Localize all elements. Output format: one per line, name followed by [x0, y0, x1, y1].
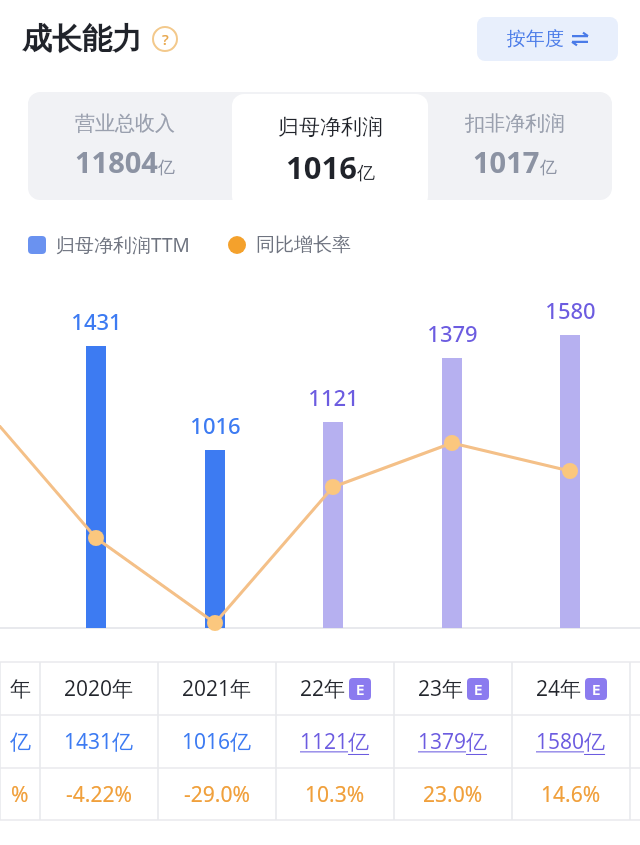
button[interactable]: 10.3%	[276, 768, 394, 820]
button[interactable]: 1121亿	[276, 715, 394, 768]
staticText: E	[592, 679, 601, 699]
staticText: 营业总收入	[75, 111, 175, 136]
staticText: 1431	[71, 306, 122, 336]
button[interactable]: 22年	[276, 662, 394, 715]
staticText: 亿	[10, 729, 31, 755]
button[interactable]: 亿	[0, 715, 40, 768]
staticText: 1121亿	[300, 727, 370, 756]
staticText: 亿	[158, 157, 175, 178]
staticText: 1379亿	[418, 727, 488, 756]
staticText: 24年	[536, 674, 582, 703]
staticText: 1431亿	[64, 727, 134, 756]
staticText: E	[356, 679, 365, 699]
staticText: 归母净利润	[278, 114, 383, 140]
button[interactable]: 1379亿	[394, 715, 512, 768]
button[interactable]: 14.6%	[512, 768, 630, 820]
button[interactable]: 扣非净利润	[417, 92, 612, 200]
staticText: 亿	[540, 157, 557, 178]
staticText: 扣非净利润	[465, 111, 565, 136]
staticText: 1017	[473, 142, 540, 181]
staticText: 1016	[286, 146, 357, 188]
button[interactable]: 23年	[394, 662, 512, 715]
button[interactable]: -29.0%	[158, 768, 276, 820]
staticText: 亿	[357, 162, 375, 185]
button[interactable]: 2021年	[158, 662, 276, 715]
staticText: 1016	[190, 410, 241, 440]
button[interactable]: 1580亿	[512, 715, 630, 768]
button[interactable]: -4.22%	[40, 768, 158, 820]
staticText: 1121	[308, 382, 359, 412]
staticText: 14.6%	[541, 780, 601, 809]
staticText: -4.22%	[66, 780, 132, 809]
button[interactable]: 归母净利润	[232, 94, 428, 208]
button[interactable]: 按年度	[477, 17, 618, 61]
button[interactable]: 营业总收入	[28, 92, 222, 200]
button[interactable]: %	[0, 768, 40, 820]
staticText: 1379	[427, 318, 478, 348]
button[interactable]: 年	[0, 662, 40, 715]
staticText: 2021年	[182, 674, 252, 703]
button[interactable]: 2020年	[40, 662, 158, 715]
button[interactable]: 帮助说明	[152, 26, 178, 52]
staticText: 2020年	[64, 674, 134, 703]
button[interactable]: 1016亿	[158, 715, 276, 768]
staticText: 22年	[300, 674, 346, 703]
staticText: 按年度	[507, 27, 564, 51]
staticText: -29.0%	[184, 780, 250, 809]
button[interactable]: 24年	[512, 662, 630, 715]
button[interactable]: 1431亿	[40, 715, 158, 768]
staticText: 1580	[545, 295, 596, 325]
staticText: %	[11, 780, 29, 809]
staticText: 10.3%	[305, 780, 365, 809]
staticText: 同比增长率	[256, 233, 351, 257]
staticText: ?	[162, 29, 169, 49]
staticText: 1016亿	[182, 727, 252, 756]
staticText: 11804	[75, 142, 158, 181]
staticText: 1580亿	[536, 727, 606, 756]
staticText: 23年	[418, 674, 464, 703]
staticText: 23.0%	[423, 780, 483, 809]
staticText: 成长能力	[22, 20, 142, 58]
button[interactable]: 23.0%	[394, 768, 512, 820]
staticText: 年	[10, 676, 31, 702]
staticText: E	[474, 679, 483, 699]
staticText: 归母净利润TTM	[56, 232, 190, 258]
